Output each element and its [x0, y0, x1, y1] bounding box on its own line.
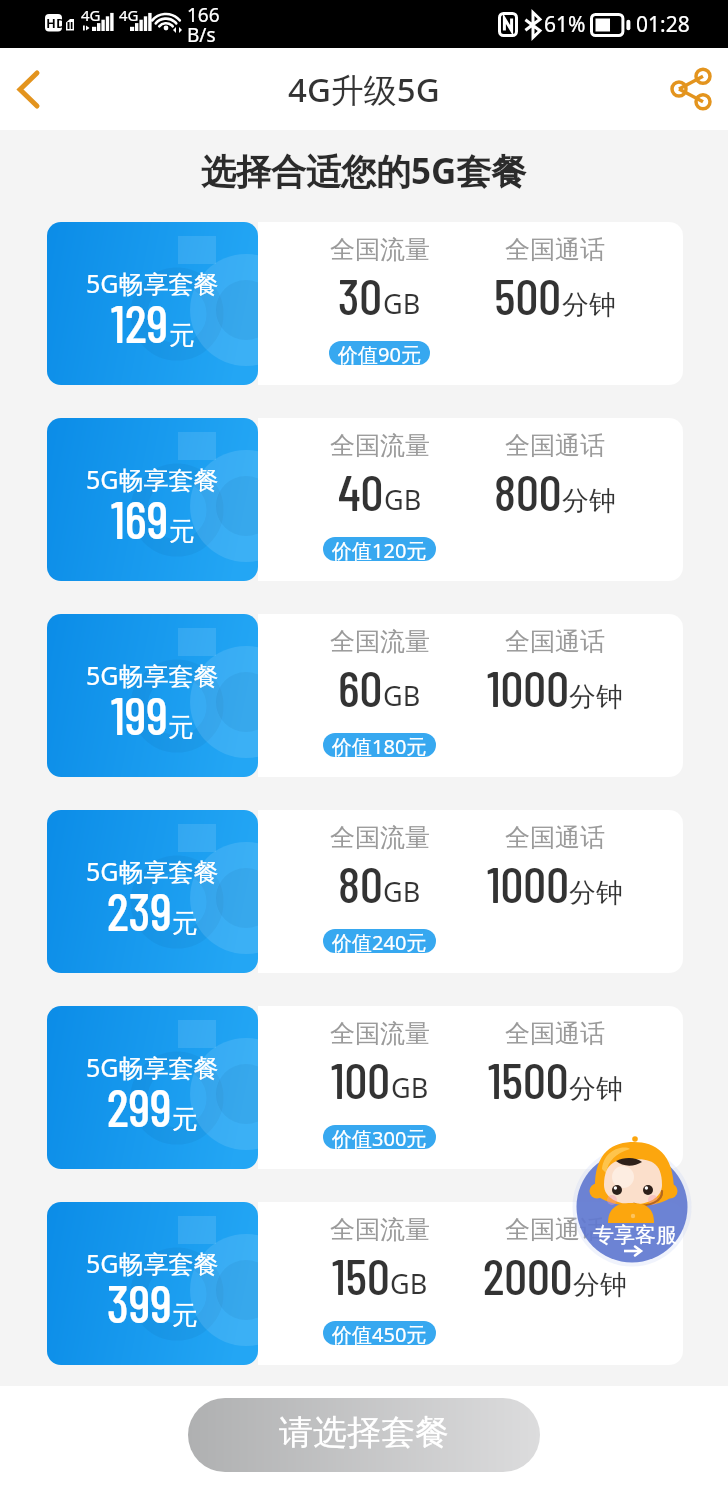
staticText: 4G升级5G	[288, 67, 440, 112]
staticText: 全国通话	[505, 234, 605, 265]
button[interactable]: 5G畅享套餐	[47, 1006, 683, 1169]
staticText: 全国流量	[330, 822, 430, 853]
staticText: 全国流量	[330, 430, 430, 461]
staticText: 全国通话	[505, 822, 605, 853]
button[interactable]: 返回	[0, 48, 56, 130]
staticText: 5G畅享套餐	[86, 266, 219, 300]
staticText: 价值90元	[338, 341, 421, 365]
staticText: 元	[172, 1103, 198, 1136]
staticText: 239	[107, 879, 172, 941]
staticText: 价值300元	[332, 1125, 427, 1149]
staticText: GB	[391, 1069, 429, 1106]
staticText: 40	[338, 460, 384, 521]
staticText: 199	[111, 683, 168, 745]
staticText: 分钟	[569, 680, 623, 714]
staticText: 169	[111, 487, 169, 549]
staticText: 元	[168, 711, 194, 744]
staticText: 01:28	[636, 10, 690, 39]
staticText: 5G畅享套餐	[86, 854, 219, 888]
staticText: 30	[338, 264, 383, 325]
staticText: 5G畅享套餐	[86, 462, 219, 496]
staticText: 1000	[487, 852, 569, 913]
staticText: 价值240元	[332, 929, 427, 953]
staticText: 100	[331, 1048, 391, 1109]
staticText: 全国流量	[330, 234, 430, 265]
staticText: GB	[390, 1265, 428, 1302]
staticText: 1500	[488, 1048, 569, 1109]
staticText: 分钟	[562, 288, 616, 322]
staticText: 全国通话	[505, 1018, 605, 1049]
staticText: 请选择套餐	[279, 1411, 449, 1454]
staticText: 全国通话	[505, 1214, 605, 1245]
staticText: 166	[187, 2, 220, 28]
staticText: 元	[172, 1299, 198, 1332]
staticText: 元	[169, 319, 195, 352]
staticText: 150	[332, 1244, 390, 1305]
staticText: 299	[107, 1075, 172, 1137]
staticText: 4G	[119, 5, 139, 25]
staticText: 分钟	[562, 484, 616, 518]
button[interactable]: 5G畅享套餐	[47, 418, 683, 581]
staticText: 全国流量	[330, 1214, 430, 1245]
staticText: GB	[383, 677, 421, 714]
staticText: 价值120元	[332, 537, 427, 561]
staticText: 5G畅享套餐	[86, 658, 219, 692]
staticText: 全国流量	[330, 626, 430, 657]
staticText: 80	[338, 852, 383, 913]
staticText: HD	[46, 14, 66, 32]
staticText: 分钟	[569, 876, 623, 910]
staticText: 129	[111, 291, 169, 353]
staticText: 专享客服	[593, 1222, 677, 1248]
staticText: 1000	[487, 656, 569, 717]
button[interactable]: 5G畅享套餐	[47, 1202, 683, 1365]
staticText: GB	[384, 481, 422, 518]
staticText: 4G	[81, 5, 101, 25]
staticText: 分钟	[573, 1268, 627, 1302]
staticText: 5G畅享套餐	[86, 1246, 219, 1280]
staticText: 元	[172, 907, 198, 940]
staticText: B/s	[187, 22, 216, 48]
staticText: 399	[107, 1271, 172, 1333]
staticText: 全国通话	[505, 430, 605, 461]
staticText: 元	[169, 515, 195, 548]
button[interactable]: 请选择套餐	[188, 1398, 540, 1472]
staticText: 全国流量	[330, 1018, 430, 1049]
staticText: 价值180元	[332, 733, 427, 757]
staticText: 60	[338, 656, 383, 717]
staticText: 价值450元	[332, 1321, 427, 1345]
staticText: 5G畅享套餐	[86, 1050, 219, 1084]
staticText: 61%	[544, 10, 586, 39]
staticText: 500	[494, 264, 562, 325]
staticText: 800	[494, 460, 562, 521]
button[interactable]: 5G畅享套餐	[47, 810, 683, 973]
staticText: 全国通话	[505, 626, 605, 657]
staticText: GB	[383, 873, 421, 910]
staticText: 选择合适您的5G套餐	[201, 147, 527, 195]
staticText: 分钟	[569, 1072, 623, 1106]
staticText: GB	[383, 285, 421, 322]
button[interactable]: 分享	[654, 48, 728, 130]
staticText: 2000	[483, 1244, 573, 1305]
button[interactable]: 5G畅享套餐	[47, 614, 683, 777]
button[interactable]: 专享客服	[576, 1142, 696, 1274]
button[interactable]: 5G畅享套餐	[47, 222, 683, 385]
